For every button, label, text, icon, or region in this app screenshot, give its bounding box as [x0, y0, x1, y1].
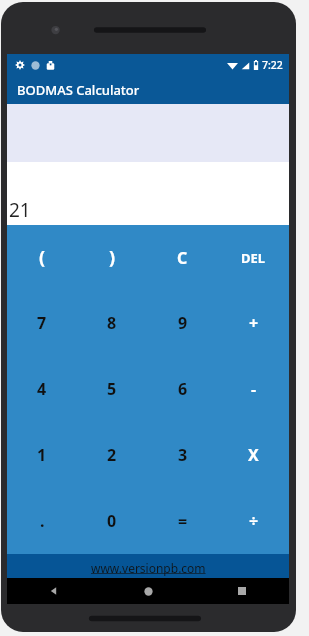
- staticText: X: [248, 444, 259, 466]
- staticText: 0: [107, 510, 117, 532]
- button[interactable]: ): [77, 225, 147, 290]
- staticText: ): [109, 245, 116, 270]
- button[interactable]: 4: [7, 356, 77, 422]
- staticText: 6: [178, 378, 188, 400]
- button[interactable]: www.versionpb.com: [7, 554, 289, 582]
- staticText: 9: [178, 312, 188, 334]
- staticText: 1: [37, 444, 47, 466]
- button[interactable]: BODMAS Calculator: [7, 75, 289, 104]
- staticText: 2: [107, 444, 117, 466]
- button[interactable]: 1: [7, 422, 77, 488]
- staticText: 4: [37, 378, 47, 400]
- button[interactable]: 9: [147, 290, 218, 356]
- button[interactable]: 7: [7, 290, 77, 356]
- button[interactable]: C: [147, 225, 218, 290]
- button[interactable]: Back: [7, 578, 101, 604]
- button[interactable]: =: [147, 488, 218, 554]
- button[interactable]: Home: [101, 578, 195, 604]
- staticText: +: [249, 312, 259, 334]
- staticText: 7:22: [262, 58, 283, 72]
- staticText: 21: [9, 197, 31, 223]
- button[interactable]: 21: [7, 162, 289, 225]
- button[interactable]: Recents: [195, 578, 289, 604]
- button[interactable]: 6: [147, 356, 218, 422]
- staticText: .: [40, 510, 45, 532]
- button[interactable]: (: [7, 225, 77, 290]
- button[interactable]: -: [218, 356, 289, 422]
- button[interactable]: .: [7, 488, 77, 554]
- button[interactable]: DEL: [218, 225, 289, 290]
- staticText: =: [178, 510, 188, 532]
- staticText: (: [39, 245, 46, 270]
- staticText: 8: [107, 312, 117, 334]
- staticText: 3: [178, 444, 188, 466]
- staticText: www.versionpb.com: [91, 560, 206, 576]
- button[interactable]: 5: [77, 356, 147, 422]
- staticText: DEL: [241, 249, 266, 267]
- staticText: 5: [107, 378, 117, 400]
- button[interactable]: 8: [77, 290, 147, 356]
- button[interactable]: X: [218, 422, 289, 488]
- staticText: BODMAS Calculator: [17, 81, 140, 99]
- button[interactable]: 0: [77, 488, 147, 554]
- staticText: ÷: [249, 510, 259, 532]
- staticText: -: [251, 378, 257, 400]
- staticText: C: [177, 247, 188, 269]
- button[interactable]: 2: [77, 422, 147, 488]
- button[interactable]: 3: [147, 422, 218, 488]
- staticText: 7: [37, 312, 47, 334]
- button[interactable]: +: [218, 290, 289, 356]
- button[interactable]: ÷: [218, 488, 289, 554]
